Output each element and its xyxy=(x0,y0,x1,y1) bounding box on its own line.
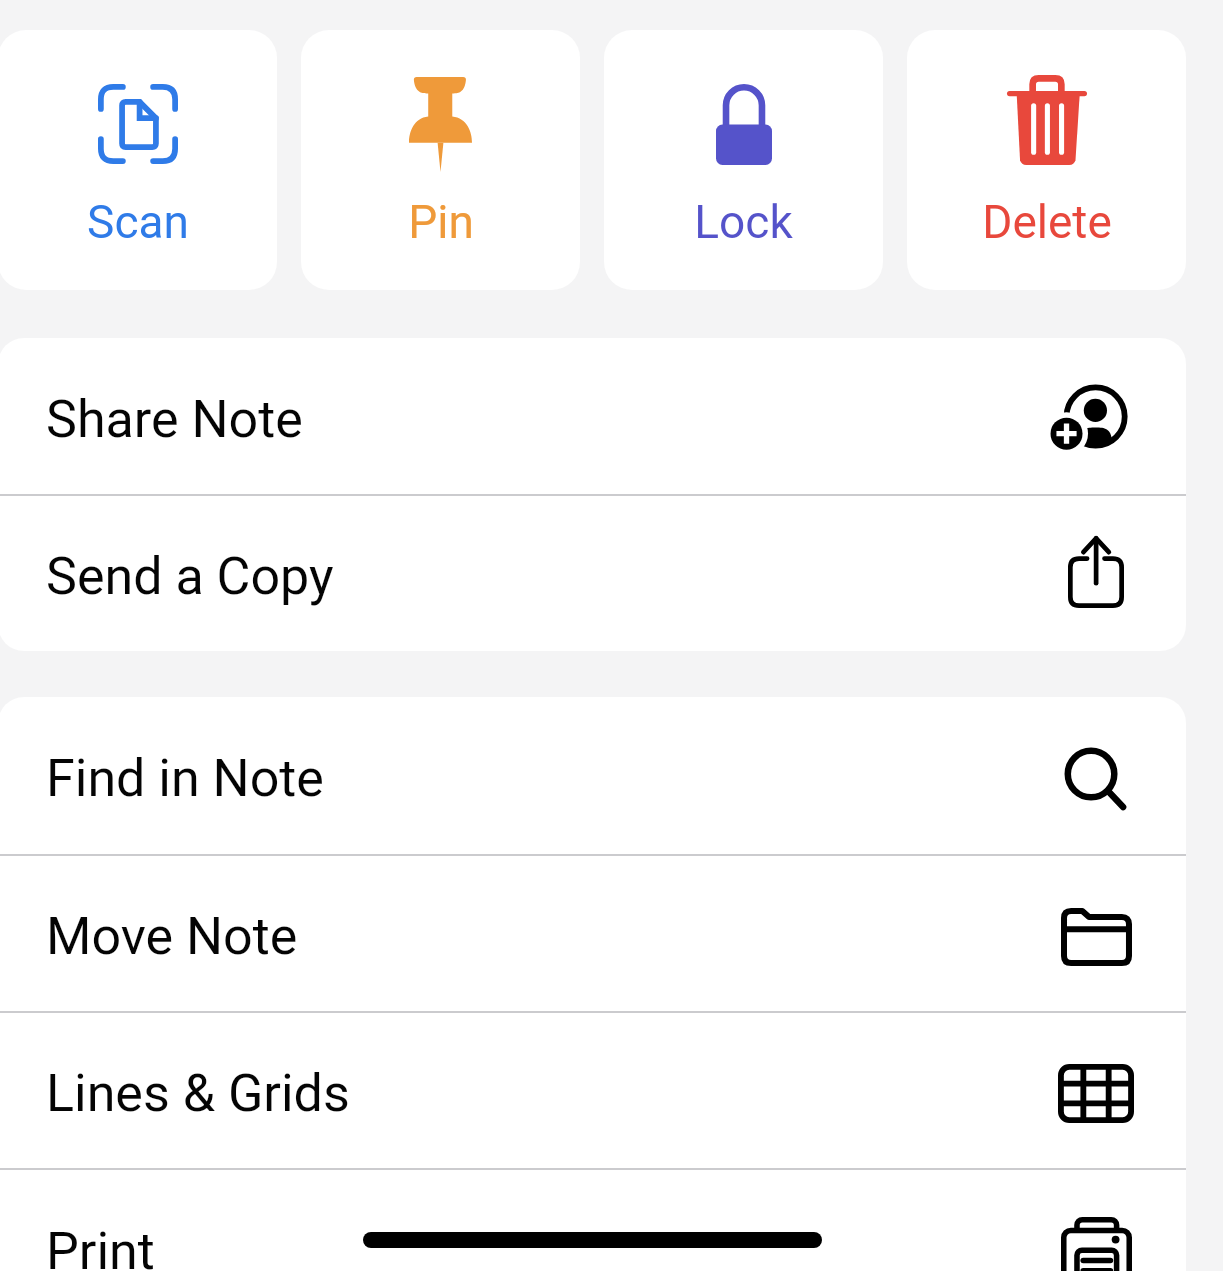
button[interactable]: Send a Copy xyxy=(0,496,1186,651)
other: Share Note xyxy=(1051,376,1131,456)
button[interactable]: Lock xyxy=(604,30,883,290)
other: Find in Note xyxy=(1065,749,1127,811)
button[interactable]: Delete xyxy=(907,30,1186,290)
staticText: Scan xyxy=(87,195,189,249)
other: Lines and Grids xyxy=(1058,1064,1134,1123)
staticText: Lock xyxy=(694,195,793,249)
button[interactable]: Find in Note xyxy=(0,697,1186,854)
button[interactable]: Share Note xyxy=(0,338,1186,494)
staticText: Send a Copy xyxy=(46,546,334,607)
button[interactable]: Pin xyxy=(301,30,580,290)
button[interactable]: Lines & Grids xyxy=(0,1013,1186,1168)
other: Move Note xyxy=(1061,908,1132,966)
staticText: Move Note xyxy=(46,906,298,967)
other: Send a Copy xyxy=(1068,536,1124,608)
staticText: Pin xyxy=(408,195,474,249)
staticText: Lines & Grids xyxy=(46,1063,350,1124)
staticText: Find in Note xyxy=(46,748,324,809)
button[interactable]: Scan xyxy=(0,30,277,290)
button[interactable]: Move Note xyxy=(0,856,1186,1011)
staticText: Share Note xyxy=(46,389,303,450)
button[interactable]: Print xyxy=(0,1170,1186,1271)
staticText: Print xyxy=(46,1221,155,1271)
staticText: Delete xyxy=(982,195,1112,249)
other: Print xyxy=(1061,1217,1132,1271)
